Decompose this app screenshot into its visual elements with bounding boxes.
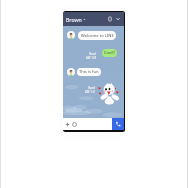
staticText: Read	[88, 86, 95, 90]
staticText: Brown	[66, 16, 82, 23]
button[interactable]: More options	[115, 16, 121, 22]
staticText: AM 1:10	[85, 90, 95, 94]
button[interactable]: Cool!!	[102, 49, 117, 57]
staticText: Cool!!	[104, 50, 115, 56]
button[interactable]: Welcome to LINE	[78, 31, 116, 40]
button[interactable]: Profile photo	[67, 68, 75, 76]
button[interactable]: Brown	[63, 12, 124, 26]
button[interactable]: This is fun	[77, 68, 101, 76]
staticText: This is fun	[79, 69, 99, 75]
button[interactable]: Call	[112, 118, 124, 130]
button[interactable]: Add attachment	[65, 122, 70, 127]
staticText: Read	[89, 52, 96, 56]
button[interactable]: Profile photo	[67, 31, 75, 39]
staticText: Welcome to LINE	[81, 33, 114, 39]
button[interactable]: Keypad	[107, 16, 113, 22]
staticText: AM 1:09	[86, 56, 96, 60]
button[interactable]: Emoji	[72, 122, 77, 127]
